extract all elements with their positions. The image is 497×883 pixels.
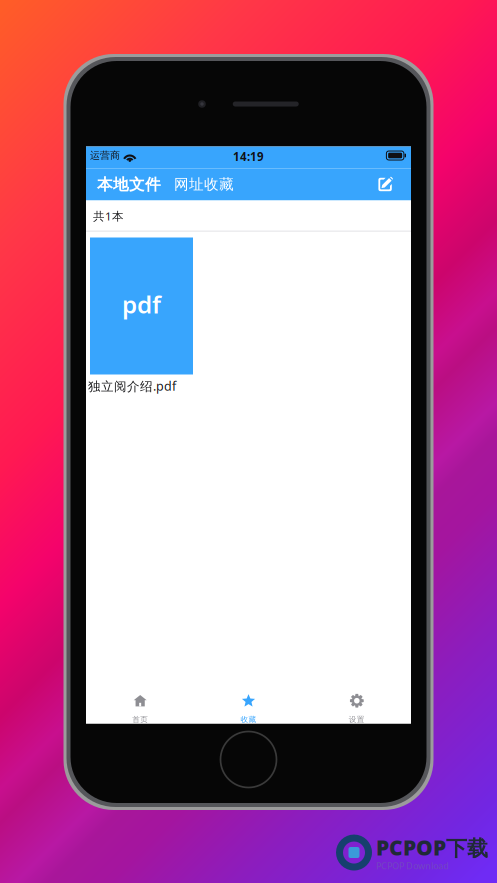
button[interactable]: 首页 [86, 681, 194, 723]
staticText: PCPOP下载 [376, 833, 488, 862]
staticText: 首页 [132, 715, 148, 724]
staticText: 独立阅介绍.pdf [88, 377, 176, 394]
staticText: PCPOP Download [376, 860, 449, 872]
staticText: 收藏 [240, 715, 256, 724]
button[interactable]: 设置 [303, 681, 411, 723]
button[interactable]: 网址收藏 [174, 175, 234, 194]
staticText: pdf [122, 287, 161, 320]
button[interactable]: pdf [90, 237, 193, 394]
button[interactable]: 本地文件 [97, 175, 161, 194]
staticText: 14:19 [233, 149, 264, 164]
button[interactable]: 编辑 [377, 177, 393, 192]
button[interactable]: 收藏 [194, 681, 303, 723]
staticText: 网址收藏 [174, 175, 234, 194]
staticText: 本地文件 [97, 175, 161, 194]
staticText: 运营商 [90, 149, 120, 162]
staticText: 共1本 [93, 208, 124, 224]
staticText: 设置 [349, 715, 365, 724]
